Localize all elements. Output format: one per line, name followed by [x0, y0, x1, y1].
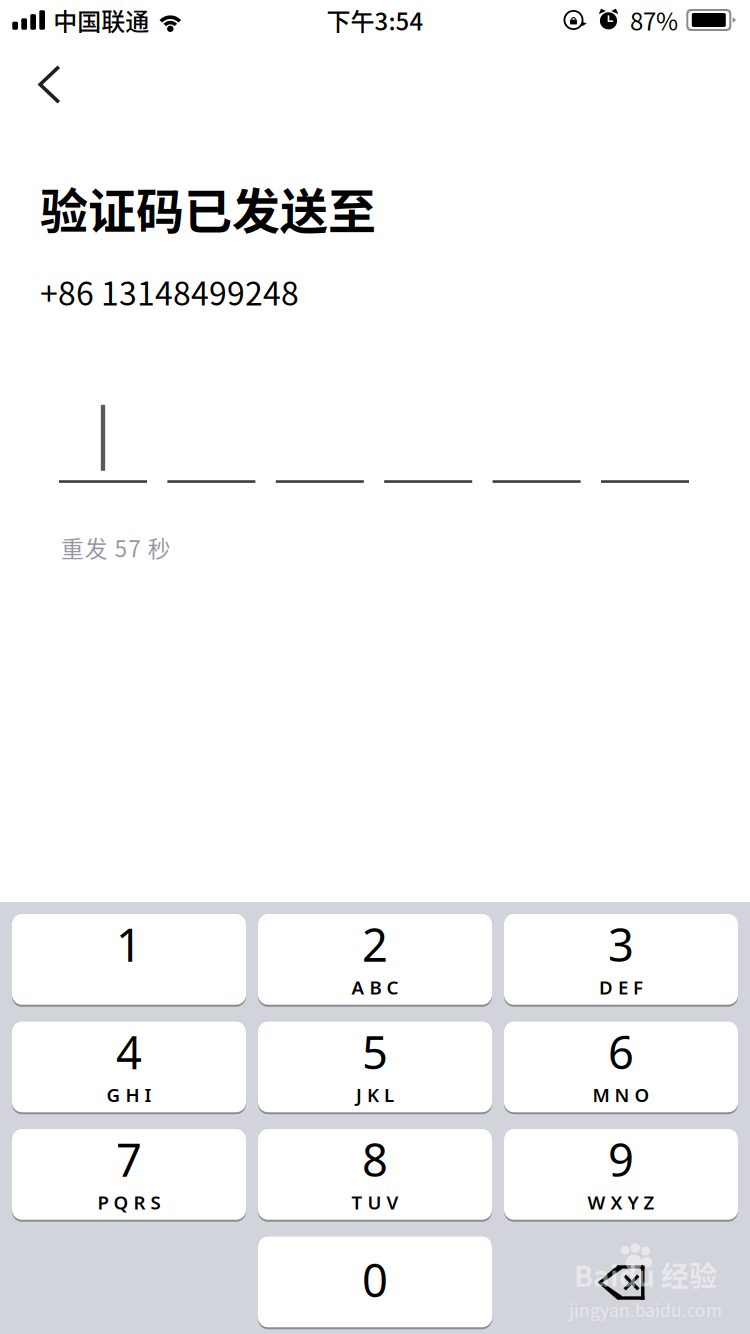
button[interactable]: Delete	[504, 1236, 738, 1329]
staticText: 8	[362, 1128, 388, 1190]
staticText: 重发 57 秒	[61, 531, 171, 564]
staticText: 3	[608, 913, 634, 975]
staticText: JKL	[356, 1082, 394, 1107]
staticText: GHI	[106, 1082, 151, 1107]
staticText: 9	[608, 1128, 634, 1190]
button[interactable]: 1	[12, 914, 246, 1007]
staticText: 中国联通	[53, 3, 149, 37]
staticText: 0	[362, 1249, 388, 1311]
staticText: +86 13148499248	[40, 268, 299, 315]
button[interactable]: 8	[258, 1129, 492, 1222]
staticText: 7	[116, 1128, 142, 1190]
staticText: TUV	[351, 1189, 398, 1215]
button[interactable]: Back	[0, 40, 85, 107]
staticText: Baidu 经验	[574, 1254, 717, 1295]
button[interactable]: 3	[504, 914, 738, 1007]
button[interactable]: 5	[258, 1021, 492, 1114]
staticText: ABC	[351, 974, 398, 1000]
staticText: 下午3:54	[326, 3, 423, 37]
staticText: 6	[608, 1021, 634, 1083]
staticText: 1	[116, 913, 142, 975]
staticText: WXYZ	[587, 1189, 654, 1215]
staticText: PQRS	[97, 1189, 160, 1215]
button[interactable]: 4	[12, 1021, 246, 1114]
button[interactable]: 6	[504, 1021, 738, 1114]
button[interactable]: 2	[258, 914, 492, 1007]
staticText: jingyan.baidu.com	[569, 1297, 722, 1322]
staticText: 2	[362, 913, 388, 975]
button[interactable]: 7	[12, 1129, 246, 1222]
staticText: DEF	[599, 974, 643, 1000]
button[interactable]: 9	[504, 1129, 738, 1222]
staticText: 87%	[630, 3, 678, 37]
staticText: 4	[116, 1021, 142, 1083]
staticText: MNO	[592, 1082, 649, 1107]
staticText: 验证码已发送至	[40, 173, 376, 242]
button[interactable]: 0	[258, 1236, 492, 1329]
staticText: 5	[362, 1021, 388, 1083]
